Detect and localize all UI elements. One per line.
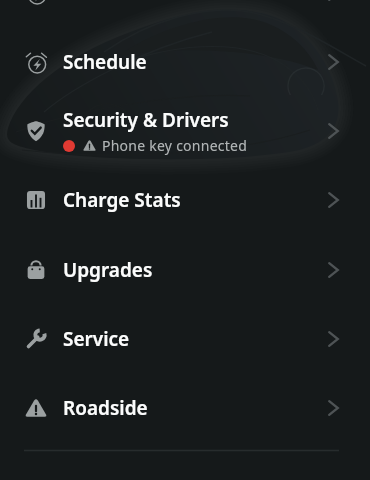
staticText: Security & Drivers bbox=[63, 107, 229, 133]
staticText: Phone key connected bbox=[102, 136, 248, 155]
button[interactable]: Upgrades bbox=[0, 235, 370, 304]
button[interactable]: Charge Stats bbox=[0, 165, 370, 234]
button[interactable]: Schedule bbox=[0, 0, 370, 27]
staticText: Roadside bbox=[63, 395, 148, 421]
button[interactable]: Service bbox=[0, 304, 370, 373]
staticText: Upgrades bbox=[63, 257, 153, 283]
staticText: Service bbox=[63, 326, 130, 352]
staticText: Charge Stats bbox=[63, 187, 181, 213]
button[interactable]: Schedule bbox=[0, 27, 370, 96]
button[interactable]: Roadside bbox=[0, 373, 370, 442]
button[interactable]: Security & Drivers bbox=[0, 96, 370, 165]
staticText: Schedule bbox=[63, 49, 147, 75]
